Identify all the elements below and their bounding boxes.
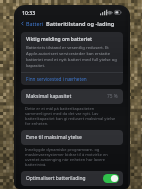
staticText: Maksimal kapasitet xyxy=(26,93,72,100)
button[interactable]: Finn servicested i nærheten xyxy=(21,73,123,85)
staticText: Evne til maksimal ytelse xyxy=(26,134,82,141)
staticText: Innebygde dynamiske programvare- og mask… xyxy=(25,147,119,167)
button[interactable]: Optimalisert batterilading, på xyxy=(103,174,119,183)
staticText: Batteriets tilstand er vesentlig reduser… xyxy=(26,45,118,69)
staticText: 10:33 xyxy=(22,9,36,16)
staticText: Batteri xyxy=(26,20,44,27)
button[interactable]: Tilbake til Batteri xyxy=(16,18,48,29)
button[interactable]: Maksimal kapasitet xyxy=(21,89,123,104)
staticText: 75 % xyxy=(107,93,118,100)
staticText: Dette er et mål på batterikapasiteten sa… xyxy=(25,106,119,126)
staticText: Optimalisert batterilading xyxy=(26,175,86,182)
staticText: Batteritilstand og -lading xyxy=(46,20,115,28)
staticText: Finn servicested i nærheten xyxy=(26,76,87,82)
button[interactable]: Evne til maksimal ytelse xyxy=(21,130,123,145)
staticText: Viktig melding om batteriet xyxy=(26,36,92,43)
button[interactable]: Optimalisert batterilading xyxy=(21,171,123,186)
